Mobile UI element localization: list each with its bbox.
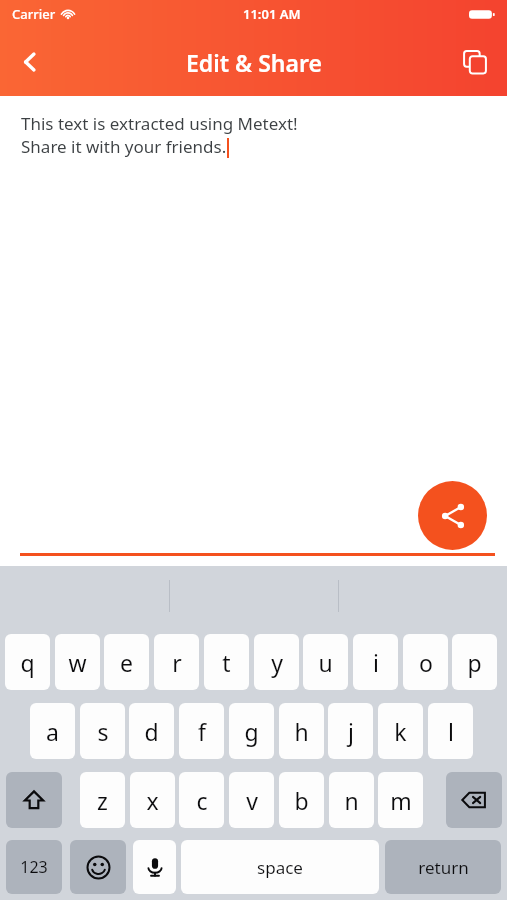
- staticText: e: [120, 647, 133, 678]
- button[interactable]: q: [5, 634, 50, 690]
- staticText: q: [20, 647, 35, 678]
- staticText: 123: [20, 856, 48, 878]
- button[interactable]: z: [80, 772, 125, 828]
- staticText: return: [418, 856, 469, 879]
- staticText: s: [97, 716, 109, 747]
- button[interactable]: d: [129, 703, 174, 759]
- staticText: h: [294, 716, 309, 747]
- staticText: f: [198, 716, 206, 747]
- staticText: i: [373, 647, 379, 678]
- button[interactable]: h: [279, 703, 324, 759]
- button[interactable]: [6, 772, 62, 828]
- staticText: 11:01 AM: [243, 5, 301, 23]
- staticText: n: [344, 785, 359, 816]
- button[interactable]: Share: [418, 481, 487, 550]
- staticText: k: [394, 716, 407, 747]
- staticText: r: [172, 647, 182, 678]
- button[interactable]: s: [80, 703, 125, 759]
- staticText: g: [244, 716, 259, 747]
- staticText: w: [68, 647, 87, 678]
- staticText: Carrier: [12, 5, 56, 23]
- button[interactable]: a: [30, 703, 75, 759]
- button[interactable]: w: [55, 634, 100, 690]
- button[interactable]: l: [428, 703, 473, 759]
- button[interactable]: e: [104, 634, 149, 690]
- button[interactable]: i: [353, 634, 398, 690]
- button[interactable]: space: [181, 840, 379, 894]
- button[interactable]: return: [385, 840, 501, 894]
- button[interactable]: [133, 840, 176, 894]
- button[interactable]: c: [179, 772, 224, 828]
- staticText: d: [144, 716, 159, 747]
- button[interactable]: j: [328, 703, 373, 759]
- staticText: m: [390, 785, 412, 816]
- button[interactable]: y: [254, 634, 299, 690]
- staticText: p: [467, 647, 482, 678]
- staticText: y: [271, 647, 283, 678]
- button[interactable]: t: [204, 634, 249, 690]
- staticText: t: [222, 647, 231, 678]
- staticText: space: [257, 856, 303, 879]
- staticText: j: [348, 716, 354, 747]
- staticText: b: [294, 785, 309, 816]
- button[interactable]: m: [378, 772, 423, 828]
- staticText: Share it with your friends.: [21, 135, 227, 158]
- staticText: z: [97, 785, 108, 816]
- button[interactable]: b: [279, 772, 324, 828]
- staticText: c: [196, 785, 208, 816]
- staticText: l: [448, 716, 454, 747]
- staticText: o: [419, 647, 433, 678]
- staticText: Edit & Share: [186, 47, 322, 78]
- button[interactable]: g: [229, 703, 274, 759]
- button[interactable]: n: [329, 772, 374, 828]
- button[interactable]: o: [403, 634, 448, 690]
- staticText: v: [246, 785, 258, 816]
- button[interactable]: u: [303, 634, 348, 690]
- button[interactable]: Back: [8, 40, 52, 84]
- button[interactable]: Copy: [453, 40, 497, 84]
- button[interactable]: k: [378, 703, 423, 759]
- staticText: This text is extracted using Metext!: [21, 112, 298, 135]
- staticText: u: [318, 647, 333, 678]
- button[interactable]: x: [130, 772, 175, 828]
- button[interactable]: [70, 840, 126, 894]
- button[interactable]: v: [229, 772, 274, 828]
- button[interactable]: [446, 772, 502, 828]
- staticText: x: [146, 785, 159, 816]
- button[interactable]: f: [179, 703, 224, 759]
- staticText: a: [46, 716, 59, 747]
- button[interactable]: p: [452, 634, 497, 690]
- button[interactable]: 123: [6, 840, 62, 894]
- button[interactable]: r: [154, 634, 199, 690]
